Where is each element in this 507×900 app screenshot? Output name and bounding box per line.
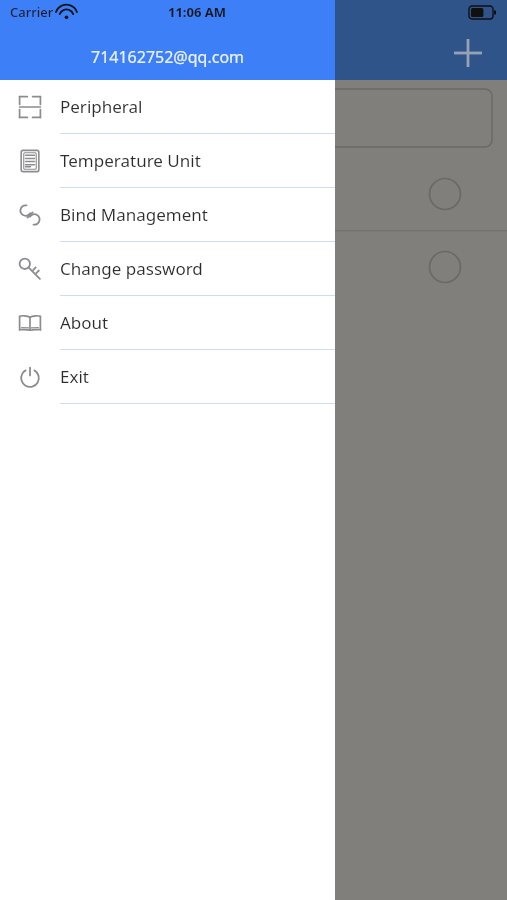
staticText: Peripheral <box>60 95 143 118</box>
button[interactable]: Change password <box>0 242 335 296</box>
button[interactable]: Add <box>443 28 493 78</box>
staticText: Exit <box>60 365 89 388</box>
staticText: Change password <box>60 257 203 280</box>
button[interactable]: Exit <box>0 350 335 404</box>
staticText: Bind Management <box>60 203 208 226</box>
staticText: Carrier <box>10 3 54 21</box>
staticText: 714162752@qq.com <box>91 46 245 68</box>
button[interactable]: Temperature Unit <box>0 134 335 188</box>
staticText: About <box>60 311 109 334</box>
staticText: Temperature Unit <box>60 149 201 172</box>
button[interactable]: About <box>0 296 335 350</box>
staticText: 11:06 AM <box>168 3 227 21</box>
button[interactable]: Bind Management <box>0 188 335 242</box>
button[interactable]: Peripheral <box>0 80 335 134</box>
